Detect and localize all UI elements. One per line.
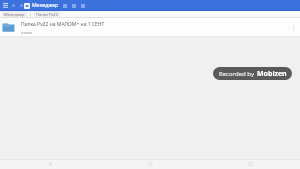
- button[interactable]: Action: [19, 3, 24, 8]
- button[interactable]: Sort: [71, 3, 77, 9]
- button[interactable]: Менеджер: [24, 2, 59, 9]
- staticText: Recorded by: [219, 70, 254, 78]
- button[interactable]: Менеджер: [2, 11, 27, 18]
- button[interactable]: More options: [80, 3, 86, 9]
- button[interactable]: Search: [62, 3, 68, 9]
- button[interactable]: Папка PvZ2 на МАЛОМ+ на 1 СЕНТ: [0, 18, 300, 37]
- button[interactable]: Action: [11, 3, 16, 8]
- staticText: Папка PvZ2: [36, 12, 58, 17]
- button[interactable]: Menu: [1, 1, 9, 10]
- staticText: папка: [21, 30, 33, 35]
- staticText: Mobizen: [257, 69, 287, 79]
- button[interactable]: Папка PvZ2: [34, 11, 60, 18]
- staticText: Папка PvZ2 на МАЛОМ+ на 1 СЕНТ: [21, 21, 105, 28]
- staticText: Менеджер: [4, 12, 25, 17]
- button[interactable]: More options: [290, 23, 296, 33]
- staticText: Менеджер: [32, 2, 59, 9]
